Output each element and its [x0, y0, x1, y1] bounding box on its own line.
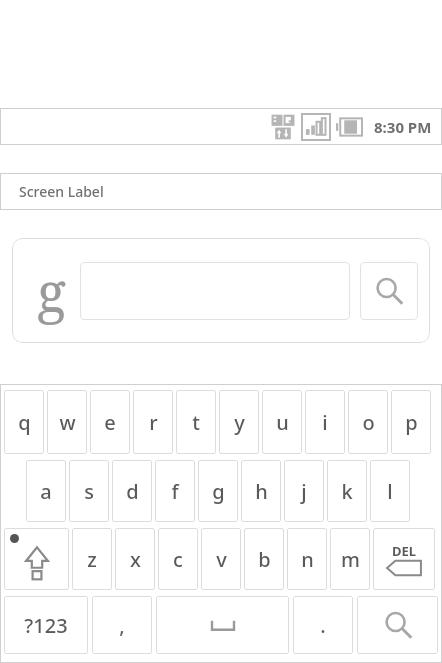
button[interactable]: [80, 262, 350, 320]
button[interactable]: i: [305, 390, 345, 454]
staticText: Screen Label: [19, 182, 104, 201]
button[interactable]: ,: [92, 596, 152, 654]
button[interactable]: u: [262, 390, 302, 454]
button[interactable]: s: [69, 460, 109, 522]
staticText: p: [405, 409, 418, 436]
button[interactable]: q: [4, 390, 44, 454]
staticText: ?123: [24, 612, 68, 639]
staticText: c: [173, 546, 183, 573]
staticText: z: [87, 546, 97, 573]
button[interactable]: Search: [357, 596, 438, 654]
button[interactable]: z: [72, 528, 112, 590]
button[interactable]: t: [176, 390, 216, 454]
button[interactable]: .: [293, 596, 353, 654]
button[interactable]: y: [219, 390, 259, 454]
button[interactable]: w: [47, 390, 87, 454]
button[interactable]: k: [327, 460, 367, 522]
staticText: t: [192, 409, 200, 436]
staticText: n: [301, 546, 314, 573]
staticText: h: [255, 478, 268, 505]
button[interactable]: Search: [360, 262, 418, 320]
button[interactable]: Space: [156, 596, 289, 654]
staticText: b: [258, 546, 271, 573]
staticText: y: [234, 409, 245, 436]
staticText: q: [18, 409, 31, 436]
staticText: d: [126, 478, 139, 505]
button[interactable]: v: [201, 528, 241, 590]
button[interactable]: p: [391, 390, 431, 454]
button[interactable]: c: [158, 528, 198, 590]
button[interactable]: Screen Label: [0, 173, 442, 210]
staticText: s: [84, 478, 94, 505]
button[interactable]: f: [155, 460, 195, 522]
button[interactable]: x: [115, 528, 155, 590]
button[interactable]: g: [198, 460, 238, 522]
button[interactable]: ?123: [4, 596, 88, 654]
button[interactable]: h: [241, 460, 281, 522]
button[interactable]: n: [287, 528, 327, 590]
button[interactable]: r: [133, 390, 173, 454]
staticText: j: [301, 478, 307, 505]
staticText: o: [362, 409, 375, 436]
button[interactable]: m: [330, 528, 370, 590]
button[interactable]: e: [90, 390, 130, 454]
staticText: ,: [119, 612, 125, 639]
button[interactable]: b: [244, 528, 284, 590]
staticText: l: [387, 478, 393, 505]
staticText: v: [216, 546, 227, 573]
staticText: 8:30 PM: [374, 117, 432, 137]
staticText: k: [341, 478, 353, 505]
staticText: f: [171, 478, 179, 505]
staticText: g: [37, 254, 67, 328]
button[interactable]: j: [284, 460, 324, 522]
staticText: g: [212, 478, 225, 505]
staticText: u: [276, 409, 289, 436]
staticText: w: [59, 409, 76, 436]
staticText: m: [341, 546, 360, 573]
staticText: DEL: [392, 542, 417, 560]
staticText: e: [104, 409, 116, 436]
button[interactable]: Shift: [4, 528, 69, 590]
button[interactable]: a: [26, 460, 66, 522]
staticText: r: [149, 409, 158, 436]
staticText: .: [320, 612, 326, 639]
button[interactable]: d: [112, 460, 152, 522]
staticText: x: [130, 546, 141, 573]
staticText: a: [40, 478, 52, 505]
button[interactable]: o: [348, 390, 388, 454]
staticText: i: [322, 409, 328, 436]
button[interactable]: l: [370, 460, 410, 522]
button[interactable]: Delete: [373, 528, 435, 590]
